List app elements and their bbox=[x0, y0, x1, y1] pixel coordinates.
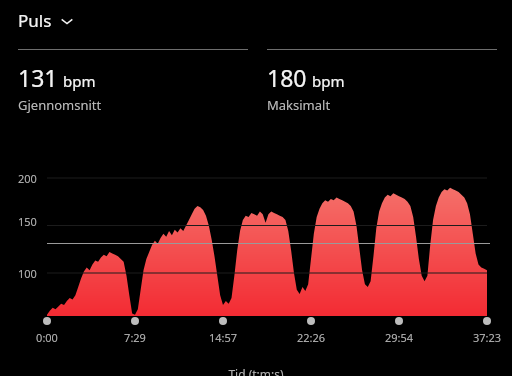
button[interactable]: 180 bbox=[267, 49, 497, 114]
staticText: bpm bbox=[312, 71, 345, 91]
staticText: Tid (t:m:s) bbox=[0, 366, 512, 376]
button[interactable]: 131 bbox=[18, 49, 248, 114]
staticText: 131 bbox=[18, 62, 58, 93]
staticText: 150 bbox=[18, 214, 37, 229]
staticText: Maksimalt bbox=[267, 96, 331, 114]
staticText: 180 bbox=[267, 62, 307, 93]
button[interactable]: Puls bbox=[18, 9, 74, 32]
staticText: Gjennomsnitt bbox=[18, 96, 102, 114]
staticText: 200 bbox=[18, 171, 37, 186]
staticText: bpm bbox=[63, 71, 96, 91]
staticText: 29:54 bbox=[373, 330, 425, 345]
other: Expand metric selector bbox=[60, 14, 74, 28]
staticText: Puls bbox=[18, 9, 52, 32]
staticText: 14:57 bbox=[197, 330, 249, 345]
button[interactable]: 200 bbox=[0, 162, 512, 362]
staticText: 100 bbox=[18, 266, 37, 281]
staticText: 37:23 bbox=[461, 330, 512, 345]
staticText: 7:29 bbox=[109, 330, 161, 345]
staticText: 22:26 bbox=[285, 330, 337, 345]
staticText: 0:00 bbox=[21, 330, 73, 345]
